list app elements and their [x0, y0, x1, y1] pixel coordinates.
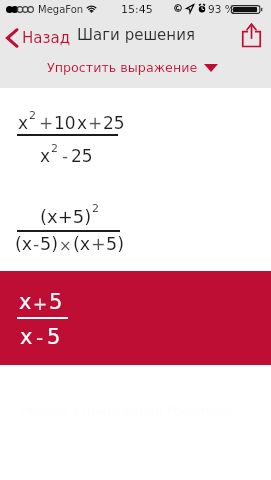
staticText: (x+5): [40, 206, 92, 227]
staticText: 25: [71, 146, 93, 166]
staticText: 15:45: [121, 3, 153, 16]
staticText: +: [39, 113, 54, 133]
staticText: 93 %: [208, 3, 235, 15]
staticText: Упростить выражение: [47, 60, 198, 75]
staticText: 2: [29, 109, 36, 122]
staticText: x: [18, 113, 29, 133]
staticText: Шаги решения: [77, 26, 195, 43]
staticText: -: [33, 234, 40, 254]
staticText: 25: [103, 113, 125, 133]
staticText: 5): [40, 234, 58, 254]
staticText: +: [33, 294, 48, 314]
staticText: x: [77, 113, 88, 133]
staticText: (x: [73, 234, 91, 254]
staticText: x: [40, 146, 51, 166]
button[interactable]: Share: [236, 20, 266, 56]
staticText: +: [91, 234, 106, 254]
staticText: MegaFon: [38, 4, 84, 16]
staticText: (x: [15, 234, 33, 254]
button[interactable]: Упростить выражение: [41, 55, 224, 80]
staticText: -: [36, 326, 44, 349]
staticText: 5): [106, 234, 124, 254]
staticText: Назад: [22, 29, 71, 46]
button[interactable]: Назад: [0, 20, 77, 56]
staticText: x: [20, 325, 33, 349]
staticText: -: [62, 146, 69, 166]
staticText: 2: [92, 202, 99, 215]
staticText: 5: [49, 290, 63, 314]
staticText: x: [19, 290, 32, 314]
staticText: 5: [47, 325, 61, 349]
staticText: +: [88, 113, 103, 133]
staticText: 2: [51, 142, 58, 155]
staticText: ×: [59, 237, 72, 254]
staticText: 10: [54, 113, 76, 133]
